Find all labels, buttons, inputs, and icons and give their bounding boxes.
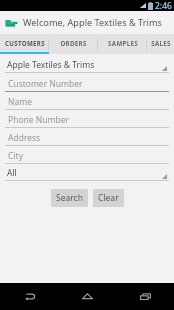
staticText: Customer Number (8, 78, 83, 90)
staticText: Clear (98, 192, 119, 204)
staticText: Name (8, 96, 32, 108)
button[interactable]: Clear (93, 189, 124, 207)
button[interactable]: Back (0, 283, 58, 310)
staticText: ORDERS (60, 39, 87, 47)
staticText: SAMPLES (108, 39, 138, 47)
staticText: Address (8, 132, 41, 144)
button[interactable]: CUSTOMERS (0, 34, 49, 54)
staticText: Phone Number (8, 114, 69, 126)
button[interactable]: Name (5, 95, 169, 110)
button[interactable]: City (5, 149, 169, 164)
button[interactable]: SAMPLES (98, 34, 147, 54)
button[interactable]: Search (51, 189, 88, 207)
button[interactable]: App icon (4, 15, 19, 30)
staticText: City (8, 150, 23, 162)
staticText: All (7, 167, 17, 179)
button[interactable]: Customer Number (5, 77, 169, 92)
staticText: CUSTOMERS (5, 39, 45, 47)
button[interactable]: Home (58, 283, 116, 310)
button[interactable]: ORDERS (49, 34, 98, 54)
staticText: SALES (151, 39, 171, 47)
button[interactable]: SALES (147, 34, 174, 54)
button[interactable]: Recent apps (116, 283, 174, 310)
button[interactable]: Address (5, 131, 169, 146)
button[interactable]: Apple Textiles & Trims (5, 58, 169, 73)
staticText: 2:46 (155, 0, 172, 11)
staticText: Apple Textiles & Trims (7, 59, 95, 71)
button[interactable]: All (5, 166, 169, 181)
button[interactable]: Phone Number (5, 113, 169, 128)
staticText: Welcome, Apple Textiles & Trims (23, 16, 162, 29)
staticText: Search (56, 192, 83, 204)
